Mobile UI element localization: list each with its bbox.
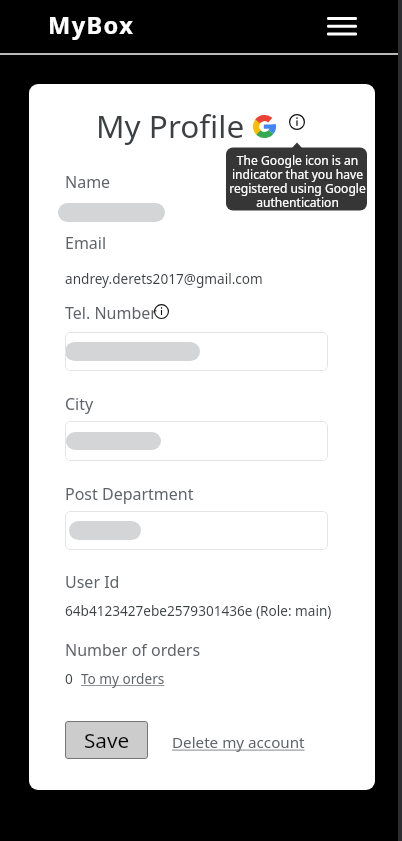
button[interactable]: [65, 421, 328, 461]
button[interactable]: [65, 332, 328, 371]
staticText: Email: [65, 232, 107, 254]
staticText: Number of orders: [65, 639, 201, 661]
button[interactable]: To my orders: [77, 665, 169, 692]
staticText: 0: [65, 669, 73, 688]
button[interactable]: [65, 511, 328, 550]
staticText: My Profile: [96, 104, 245, 147]
button[interactable]: MyBox: [36, 3, 147, 47]
staticText: MyBox: [48, 9, 135, 41]
staticText: The Google icon is an indicator that you…: [228, 152, 367, 211]
button[interactable]: Info about telephone number: [154, 304, 170, 320]
staticText: Tel. Number: [65, 302, 157, 324]
staticText: Save: [84, 726, 130, 754]
staticText: User Id: [65, 571, 120, 593]
staticText: To my orders: [81, 669, 165, 688]
staticText: Delete my account: [172, 732, 305, 753]
button[interactable]: Menu: [317, 7, 367, 46]
button[interactable]: Delete my account: [167, 727, 310, 758]
staticText: andrey.derets2017@gmail.com: [65, 269, 263, 288]
staticText: Post Department: [65, 483, 194, 505]
staticText: Name: [65, 171, 111, 193]
staticText: 64b4123427ebe2579301436e (Role: main): [65, 601, 332, 620]
button[interactable]: Save: [65, 721, 148, 759]
staticText: City: [65, 393, 94, 415]
button[interactable]: Info about Google authentication: [288, 113, 306, 131]
